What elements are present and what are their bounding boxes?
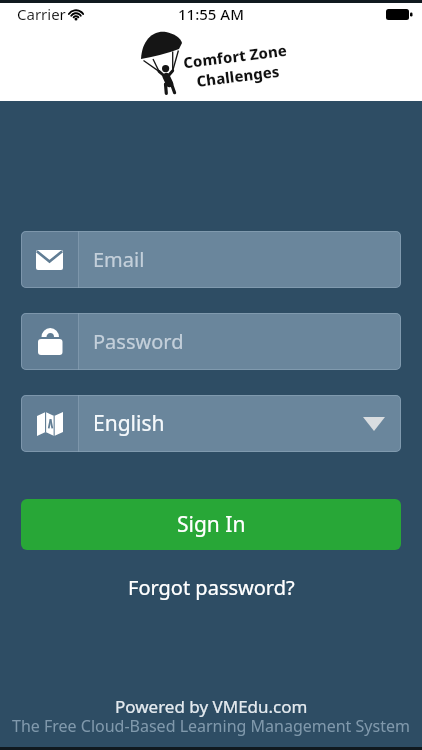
button[interactable]: Sign In: [21, 499, 401, 550]
staticText: Email: [93, 246, 145, 273]
button[interactable]: Password: [21, 313, 401, 370]
button[interactable]: English: [21, 395, 401, 452]
staticText: The Free Cloud-Based Learning Management…: [12, 715, 410, 737]
staticText: Forgot password?: [128, 574, 295, 600]
staticText: 11:55 AM: [178, 4, 244, 24]
staticText: Challenges: [195, 61, 281, 91]
staticText: Powered by VMEdu.com: [115, 695, 308, 717]
staticText: English: [93, 409, 165, 438]
button[interactable]: Email: [21, 231, 401, 288]
button[interactable]: Forgot password?: [0, 574, 422, 600]
staticText: Password: [93, 328, 184, 355]
staticText: Sign In: [177, 510, 246, 539]
staticText: Carrier: [17, 4, 66, 24]
staticText: Comfort Zone: [182, 40, 289, 72]
